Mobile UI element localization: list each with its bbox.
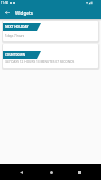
- staticText: 347 DAYS 12 HOURS 13 MINUTES 07 SECONDS: [5, 60, 75, 64]
- button[interactable]: Back: [13, 167, 29, 177]
- button[interactable]: NEXT HOLIDAY: [3, 21, 98, 41]
- button[interactable]: Home: [43, 167, 59, 177]
- button[interactable]: Recent apps: [71, 167, 87, 177]
- staticText: COUNTDOWN: [5, 53, 26, 57]
- staticText: Widgets: [15, 10, 33, 16]
- staticText: 5 days 7 hours: [5, 34, 25, 38]
- button[interactable]: COUNTDOWN: [3, 44, 98, 68]
- button[interactable]: Navigate up: [0, 6, 14, 19]
- staticText: NEXT HOLIDAY: [5, 25, 29, 29]
- staticText: 11:50: [1, 1, 9, 5]
